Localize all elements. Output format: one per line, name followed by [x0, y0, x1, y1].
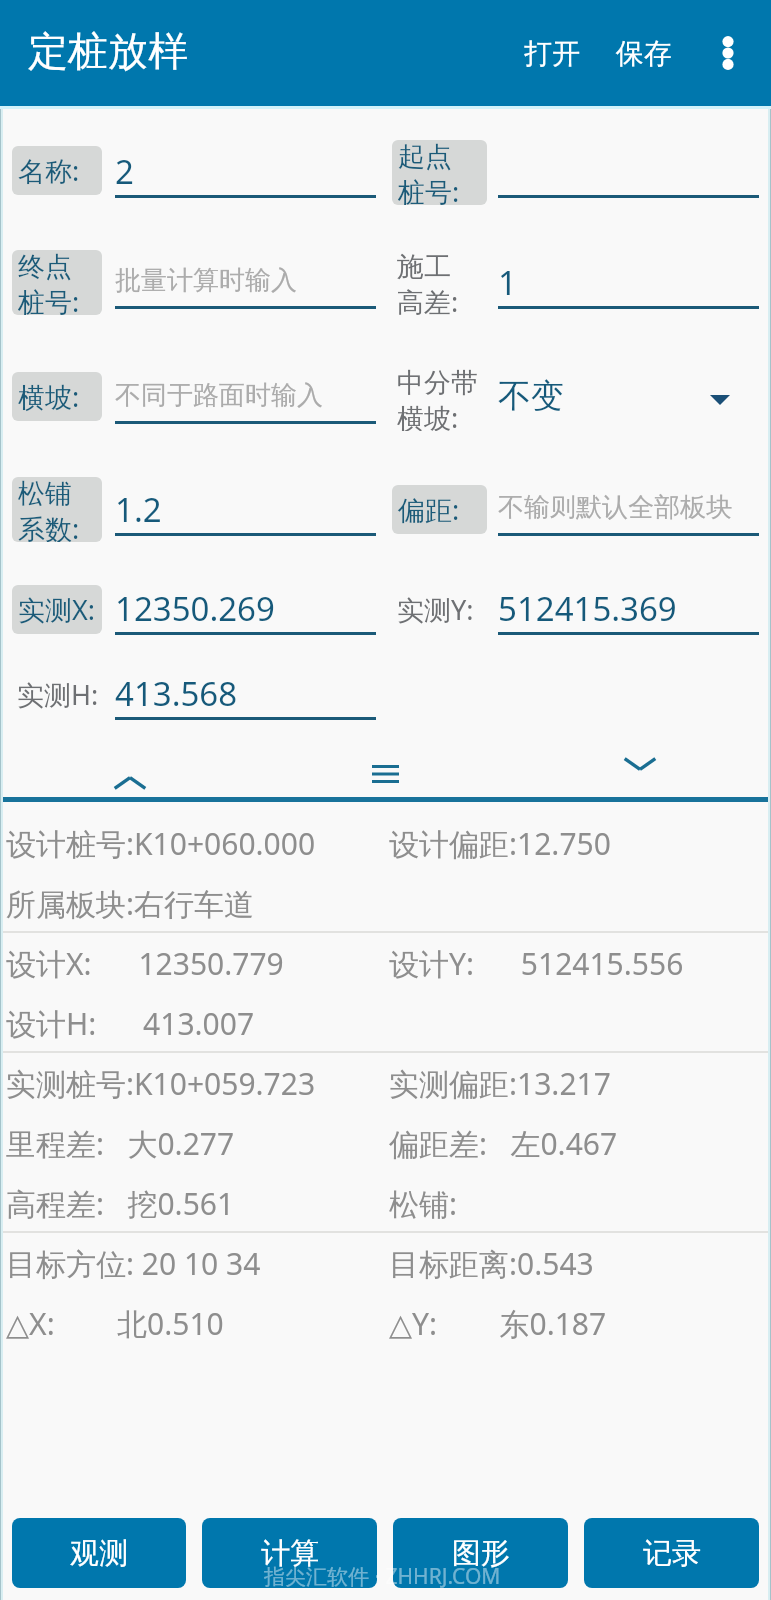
- staticText: 目标距离:0.543: [389, 1243, 594, 1284]
- staticText: 实测Y:: [397, 591, 474, 628]
- button[interactable]: 横坡:: [12, 372, 102, 421]
- button[interactable]: 12350.269: [115, 586, 376, 635]
- button[interactable]: 保存: [598, 14, 690, 92]
- staticText: 413.568: [115, 671, 238, 712]
- staticText: 设计X: 12350.779: [6, 943, 284, 984]
- staticText: 里程差: 大0.277: [6, 1123, 235, 1164]
- staticText: 计算: [261, 1535, 319, 1572]
- button[interactable]: 不输则默认全部板块: [498, 487, 759, 536]
- staticText: 偏距差: 左0.467: [389, 1123, 618, 1164]
- button[interactable]: Menu: [325, 744, 445, 797]
- staticText: 名称:: [18, 152, 80, 189]
- staticText: 设计桩号:K10+060.000: [6, 823, 316, 864]
- button[interactable]: 记录: [584, 1518, 759, 1588]
- button[interactable]: 名称:: [12, 146, 102, 195]
- button[interactable]: 图形: [393, 1518, 568, 1588]
- staticText: 12350.269: [115, 586, 275, 627]
- button[interactable]: 不同于路面时输入: [115, 375, 376, 424]
- staticText: 施工 高差:: [397, 250, 459, 315]
- staticText: 不变: [498, 375, 564, 416]
- staticText: △Y: 东0.187: [389, 1303, 607, 1344]
- staticText: 所属板块:右行车道: [6, 883, 255, 924]
- button[interactable]: 观测: [12, 1518, 186, 1588]
- staticText: 2: [115, 149, 134, 190]
- staticText: 定桩放样: [28, 26, 188, 76]
- staticText: △X: 北0.510: [6, 1303, 224, 1344]
- staticText: 高程差: 挖0.561: [6, 1183, 235, 1224]
- staticText: 横坡:: [18, 378, 80, 415]
- staticText: 批量计算时输入: [115, 264, 297, 297]
- staticText: 512415.369: [498, 586, 677, 627]
- button[interactable]: 计算: [202, 1518, 377, 1588]
- staticText: 设计H: 413.007: [6, 1003, 255, 1044]
- staticText: 观测: [70, 1535, 128, 1572]
- staticText: 松铺 系数:: [18, 477, 80, 542]
- staticText: 不输则默认全部板块: [498, 491, 732, 524]
- button[interactable]: 不变: [498, 375, 759, 424]
- button[interactable]: 终点 桩号:: [12, 250, 102, 315]
- button[interactable]: Previous point: [71, 744, 191, 797]
- button[interactable]: 松铺 系数:: [12, 477, 102, 542]
- button[interactable]: 偏距:: [392, 485, 487, 534]
- staticText: 偏距:: [398, 491, 460, 528]
- staticText: 松铺:: [389, 1183, 458, 1224]
- button[interactable]: 实测H:: [12, 670, 102, 719]
- staticText: 实测偏距:13.217: [389, 1063, 611, 1104]
- staticText: 实测H:: [17, 676, 99, 713]
- button[interactable]: 413.568: [115, 671, 376, 720]
- button[interactable]: 施工 高差:: [392, 250, 487, 315]
- button[interactable]: 中分带 横坡:: [392, 366, 492, 431]
- staticText: 终点 桩号:: [18, 250, 80, 315]
- staticText: 中分带 横坡:: [397, 366, 478, 431]
- button[interactable]: 批量计算时输入: [115, 260, 376, 309]
- button[interactable]: 2: [115, 149, 376, 198]
- staticText: 1: [498, 260, 517, 301]
- staticText: 打开: [524, 36, 580, 71]
- staticText: 指尖汇软件 · ZHHRJ.COM: [264, 1562, 501, 1591]
- button[interactable]: 实测X:: [12, 585, 102, 634]
- staticText: 1.2: [115, 487, 162, 528]
- button[interactable]: 实测Y:: [392, 585, 487, 634]
- button[interactable]: 打开: [506, 14, 598, 92]
- staticText: 起点 桩号:: [398, 140, 460, 205]
- button[interactable]: 1: [498, 260, 759, 309]
- staticText: 设计Y: 512415.556: [389, 943, 684, 984]
- button[interactable]: 512415.369: [498, 586, 759, 635]
- button[interactable]: Next point: [580, 744, 700, 797]
- staticText: 图形: [452, 1535, 510, 1572]
- staticText: 实测X:: [18, 591, 96, 628]
- button[interactable]: More options: [693, 8, 763, 98]
- staticText: 目标方位: 20 10 34: [6, 1243, 261, 1284]
- button[interactable]: [498, 149, 759, 198]
- staticText: 实测桩号:K10+059.723: [6, 1063, 316, 1104]
- staticText: 设计偏距:12.750: [389, 823, 611, 864]
- button[interactable]: 1.2: [115, 487, 376, 536]
- staticText: 记录: [643, 1535, 701, 1572]
- staticText: 不同于路面时输入: [115, 379, 323, 412]
- staticText: 保存: [616, 36, 672, 71]
- button[interactable]: 起点 桩号:: [392, 140, 487, 205]
